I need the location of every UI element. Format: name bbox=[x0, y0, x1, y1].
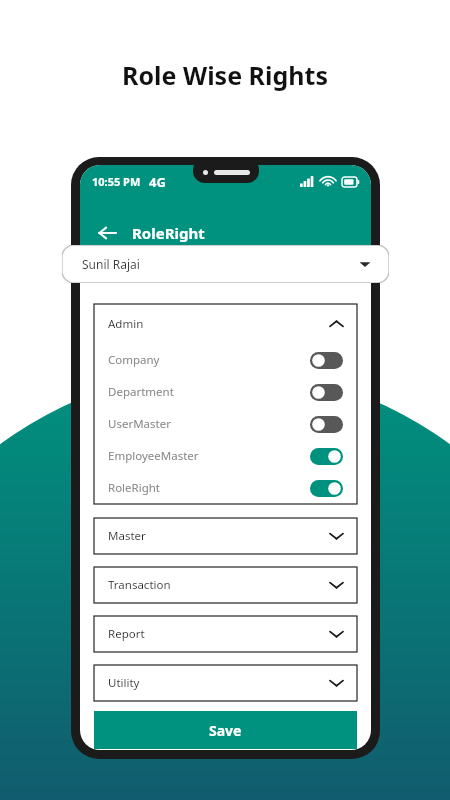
staticText: RoleRight bbox=[132, 223, 205, 243]
staticText: Role Wise Rights bbox=[0, 58, 450, 92]
button[interactable]: UserMaster bbox=[94, 408, 357, 440]
staticText: Transaction bbox=[108, 577, 171, 593]
staticText: Company bbox=[108, 352, 160, 368]
button[interactable]: Admin bbox=[94, 304, 357, 344]
button[interactable]: Company bbox=[94, 344, 357, 376]
button[interactable]: Save bbox=[94, 711, 357, 749]
staticText: Department bbox=[108, 384, 174, 400]
button[interactable]: Report bbox=[94, 616, 357, 652]
staticText: Utility bbox=[108, 675, 140, 691]
button[interactable]: Master bbox=[94, 518, 357, 554]
staticText: Master bbox=[108, 528, 146, 544]
button[interactable]: Sunil Rajai bbox=[62, 245, 389, 283]
staticText: 4G bbox=[149, 173, 166, 191]
button[interactable]: RoleRight bbox=[94, 472, 357, 504]
staticText: RoleRight bbox=[108, 480, 161, 496]
button[interactable]: Utility bbox=[94, 665, 357, 701]
button[interactable]: EmployeeMaster bbox=[94, 440, 357, 472]
button[interactable]: Back bbox=[92, 218, 122, 248]
button[interactable]: Department bbox=[94, 376, 357, 408]
staticText: Save bbox=[209, 721, 242, 740]
staticText: 10:55 PM bbox=[92, 174, 141, 189]
staticText: EmployeeMaster bbox=[108, 448, 199, 464]
staticText: Sunil Rajai bbox=[82, 256, 140, 272]
staticText: Report bbox=[108, 626, 145, 642]
button[interactable]: Transaction bbox=[94, 567, 357, 603]
staticText: Admin bbox=[108, 316, 144, 332]
staticText: UserMaster bbox=[108, 416, 171, 432]
